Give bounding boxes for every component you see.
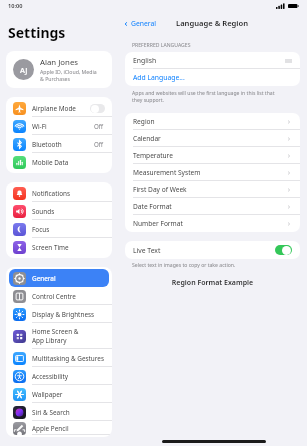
staticText: they support. [132,97,164,104]
staticText: Region [133,117,286,126]
button[interactable]: Number Format [125,215,300,232]
button[interactable]: First Day of Week [125,181,300,198]
staticText: Date Format [133,202,286,211]
staticText: Off [94,140,104,148]
staticText: Off [94,122,104,130]
button[interactable]: Accessibility [6,367,112,385]
button[interactable]: General [9,269,109,287]
staticText: Multitasking & Gestures [32,354,104,363]
staticText: App Library [32,336,67,345]
button[interactable]: Focus [6,220,112,238]
staticText: General [131,19,157,28]
button[interactable]: Calendar [125,130,300,147]
button[interactable]: Wi-Fi [6,117,112,135]
button[interactable]: Notifications [6,184,112,202]
button[interactable]: Add Language... [125,69,300,86]
button[interactable]: Temperature [125,147,300,164]
button[interactable]: Screen Time [6,238,112,256]
staticText: Calendar [133,134,286,143]
staticText: Screen Time [32,243,69,252]
staticText: Wi-Fi [32,122,94,131]
staticText: Accessibility [32,372,69,381]
staticText: AJ [20,65,28,75]
staticText: Control Centre [32,292,76,301]
staticText: Number Format [133,219,286,228]
staticText: Live Text [133,246,275,255]
button[interactable]: Live Text [125,241,300,259]
staticText: Siri & Search [32,408,70,417]
staticText: 10:00 [8,2,23,10]
button[interactable]: Wallpaper [6,385,112,403]
button[interactable]: English [125,52,300,69]
button[interactable]: Apple Pencil [6,421,112,435]
staticText: Wallpaper [32,390,63,399]
button[interactable]: Measurement System [125,164,300,181]
staticText: English [133,56,285,65]
staticText: Home Screen & [32,327,79,336]
button[interactable]: Region [125,113,300,130]
button[interactable]: AJ [6,51,112,88]
staticText: Airplane Mode [32,104,90,113]
button[interactable]: Mobile Data [6,153,112,171]
button[interactable]: Sounds [6,202,112,220]
button[interactable]: Siri & Search [6,403,112,421]
staticText: PREFERRED LANGUAGES [132,42,191,49]
staticText: Apps and websites will use the first lan… [132,90,275,97]
staticText: Temperature [133,151,286,160]
staticText: Sounds [32,207,55,216]
staticText: First Day of Week [133,185,286,194]
button[interactable]: Display & Brightness [6,305,112,323]
staticText: Settings [8,23,66,42]
staticText: General [32,274,56,283]
button[interactable]: Bluetooth [6,135,112,153]
staticText: Notifications [32,189,71,198]
staticText: Region Format Example [118,278,307,288]
button[interactable]: General [118,16,163,31]
button[interactable]: Home Screen & [6,323,112,349]
button[interactable]: Airplane Mode [6,99,112,117]
staticText: Mobile Data [32,158,69,167]
button[interactable]: Date Format [125,198,300,215]
staticText: Display & Brightness [32,310,95,319]
staticText: Language & Region [176,18,249,28]
staticText: Apple ID, iCloud, Media [40,68,97,75]
staticText: Select text in images to copy or take ac… [132,262,236,269]
staticText: Add Language... [133,73,185,82]
staticText: Apple Pencil [32,424,69,433]
staticText: Bluetooth [32,140,94,149]
staticText: Focus [32,225,50,234]
button[interactable]: Control Centre [6,287,112,305]
staticText: Alan Jones [40,57,79,68]
button[interactable]: Multitasking & Gestures [6,349,112,367]
staticText: & Purchases [40,75,71,82]
staticText: Measurement System [133,168,286,177]
